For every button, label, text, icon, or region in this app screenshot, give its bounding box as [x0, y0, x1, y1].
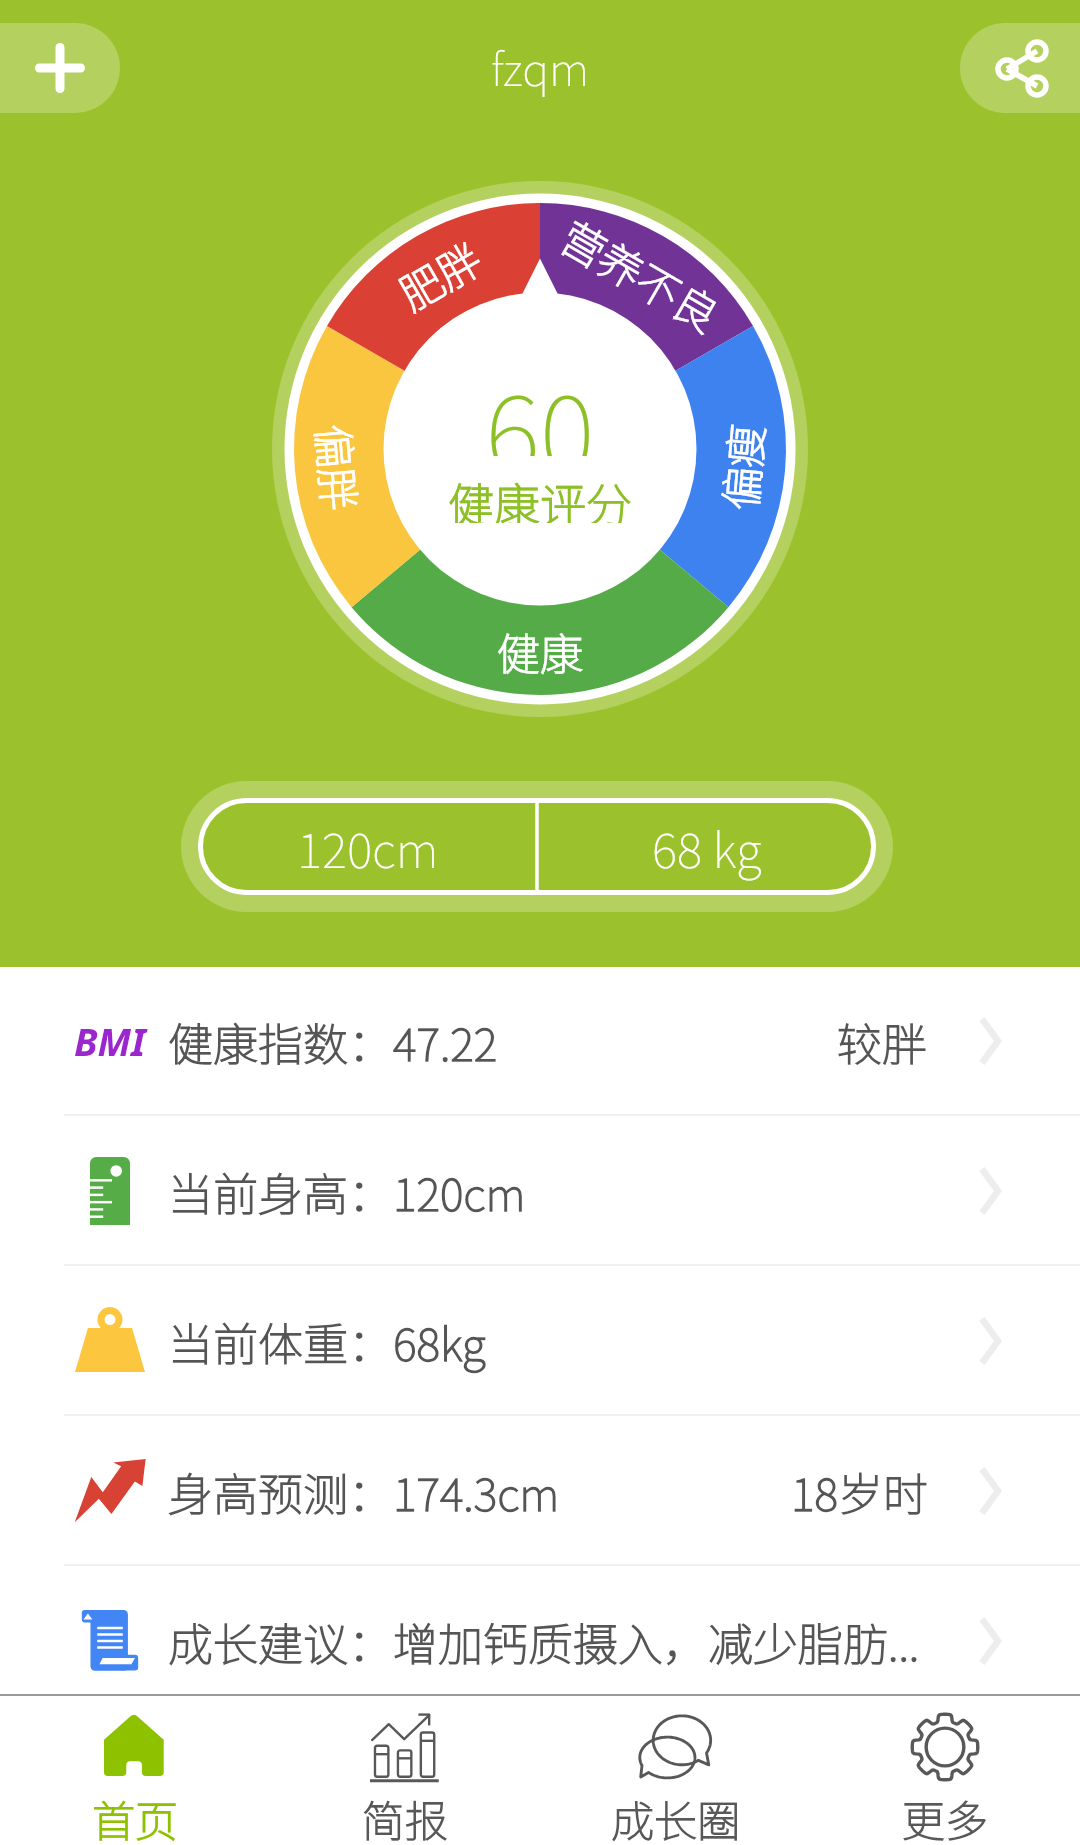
button[interactable]: 当前体重：68kg — [0, 1266, 1080, 1416]
staticText: 偏胖 — [304, 421, 374, 513]
staticText: 营养不良 — [551, 204, 731, 344]
staticText: 当前身高：120cm — [168, 1159, 526, 1224]
staticText: 120cm — [297, 812, 439, 882]
staticText: 肥胖 — [386, 226, 492, 322]
button[interactable]: 120cm — [198, 798, 537, 895]
button[interactable]: Add — [0, 23, 120, 113]
staticText: 健康评分 — [448, 469, 632, 523]
staticText: 身高预测：174.3cm — [168, 1459, 560, 1524]
button[interactable]: Share — [960, 23, 1080, 113]
staticText: 成长圈 — [611, 1787, 740, 1845]
staticText: 健康指数：47.22 — [168, 1009, 498, 1074]
button[interactable]: 简报 — [270, 1696, 540, 1845]
staticText: 偏瘦 — [706, 421, 776, 513]
button[interactable]: 首页 — [0, 1696, 270, 1845]
staticText: 18岁时 — [791, 1459, 928, 1524]
staticText: 健康 — [497, 620, 583, 682]
button[interactable]: 成长圈 — [540, 1696, 810, 1845]
staticText: BMI — [74, 1015, 146, 1067]
button[interactable]: 更多 — [810, 1696, 1080, 1845]
staticText: 更多 — [902, 1787, 988, 1845]
staticText: 首页 — [92, 1787, 178, 1845]
staticText: 较胖 — [837, 1009, 928, 1074]
staticText: 当前体重：68kg — [168, 1309, 486, 1374]
button[interactable]: 当前身高：120cm — [0, 1116, 1080, 1266]
staticText: 简报 — [362, 1787, 448, 1845]
staticText: fzqm — [491, 34, 590, 99]
staticText: 60 — [485, 352, 595, 456]
button[interactable]: BMI — [0, 966, 1080, 1116]
staticText: 68 kg — [652, 812, 762, 882]
staticText: 成长建议：增加钙质摄入，减少脂肪... — [168, 1609, 920, 1674]
button[interactable]: 身高预测：174.3cm — [0, 1416, 1080, 1566]
button[interactable]: 68 kg — [537, 798, 876, 895]
button[interactable]: 成长建议：增加钙质摄入，减少脂肪... — [0, 1566, 1080, 1716]
